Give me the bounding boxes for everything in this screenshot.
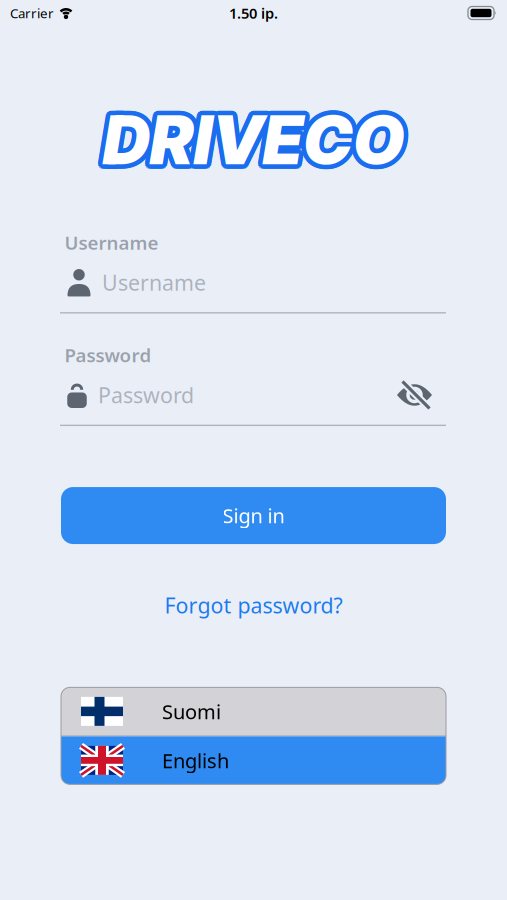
staticText: Password xyxy=(64,342,151,367)
staticText: Sign in xyxy=(222,502,284,529)
staticText: DRIVECO xyxy=(99,101,400,182)
staticText: DRIVECO xyxy=(103,97,404,178)
staticText: 1.50 ip. xyxy=(229,3,278,23)
staticText: DRIVECO xyxy=(99,98,400,179)
staticText: DRIVECO xyxy=(106,103,407,184)
staticText: DRIVECO xyxy=(105,100,406,180)
staticText: DRIVECO xyxy=(108,100,409,180)
staticText: DRIVECO xyxy=(100,103,401,184)
staticText: DRIVECO xyxy=(101,98,402,179)
staticText: Password xyxy=(98,381,194,409)
staticText: DRIVECO xyxy=(106,96,407,177)
staticText: DRIVECO xyxy=(103,104,404,185)
staticText: DRIVECO xyxy=(105,95,406,176)
staticText: DRIVECO xyxy=(101,101,402,182)
staticText: DRIVECO xyxy=(103,100,404,180)
staticText: DRIVECO xyxy=(105,101,406,182)
staticText: DRIVECO xyxy=(107,98,408,179)
staticText: DRIVECO xyxy=(101,104,402,185)
staticText: DRIVECO xyxy=(101,95,402,176)
staticText: DRIVECO xyxy=(100,96,401,177)
staticText: Carrier xyxy=(10,4,54,22)
staticText: DRIVECO xyxy=(107,101,408,182)
staticText: DRIVECO xyxy=(103,102,404,183)
staticText: Username xyxy=(102,268,206,297)
staticText: DRIVECO xyxy=(103,95,404,176)
staticText: DRIVECO xyxy=(101,100,402,180)
staticText: Forgot password? xyxy=(164,591,342,619)
staticText: English xyxy=(162,747,229,774)
staticText: DRIVECO xyxy=(98,100,399,180)
staticText: Suomi xyxy=(162,698,221,725)
staticText: DRIVECO xyxy=(105,104,406,185)
staticText: DRIVECO xyxy=(105,98,406,179)
staticText: Username xyxy=(64,230,158,255)
